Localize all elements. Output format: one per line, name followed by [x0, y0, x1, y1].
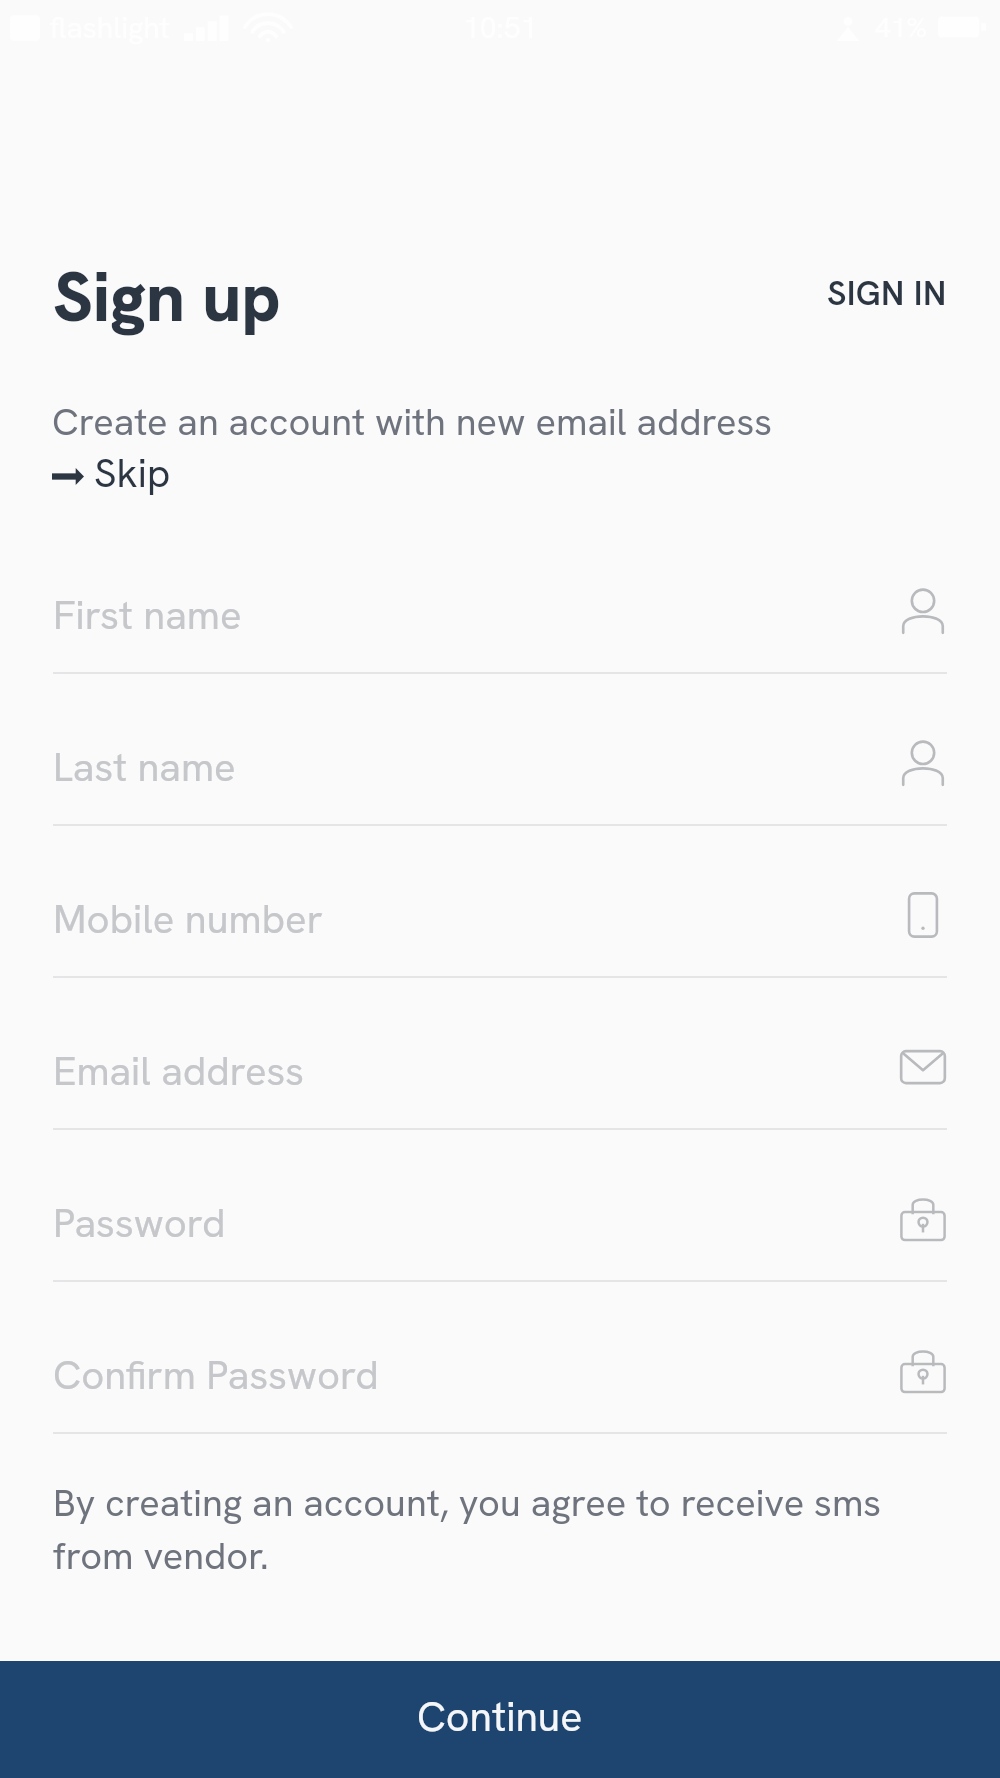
other: Person	[899, 739, 947, 787]
other: Confirm password	[899, 1347, 947, 1395]
staticText: First name	[53, 589, 242, 641]
staticText: SIGN IN	[827, 271, 947, 315]
other: Phone	[899, 891, 947, 939]
other: Password	[899, 1195, 947, 1243]
button[interactable]: Last name	[0, 674, 1000, 826]
other: Person	[899, 587, 947, 635]
staticText: Email address	[53, 1045, 305, 1097]
button[interactable]: Skip	[50, 443, 171, 503]
staticText: Password	[53, 1197, 226, 1249]
button[interactable]: Mobile number	[0, 826, 1000, 978]
staticText: Create an account with new email address	[52, 397, 773, 447]
other: Email	[899, 1043, 947, 1091]
staticText: By creating an account, you agree to rec…	[53, 1478, 933, 1580]
staticText: Mobile number	[53, 893, 323, 945]
button[interactable]: Continue	[0, 1661, 1000, 1778]
button[interactable]: Confirm Password	[0, 1282, 1000, 1434]
button[interactable]: First name	[0, 522, 1000, 674]
staticText: Last name	[53, 741, 236, 793]
staticText: Confirm Password	[53, 1349, 379, 1401]
staticText: Skip	[94, 447, 171, 499]
button[interactable]: Email address	[0, 978, 1000, 1130]
button[interactable]: Password	[0, 1130, 1000, 1282]
button[interactable]: SIGN IN	[817, 263, 957, 331]
staticText: Sign up	[53, 252, 281, 342]
staticText: Continue	[417, 1690, 583, 1743]
